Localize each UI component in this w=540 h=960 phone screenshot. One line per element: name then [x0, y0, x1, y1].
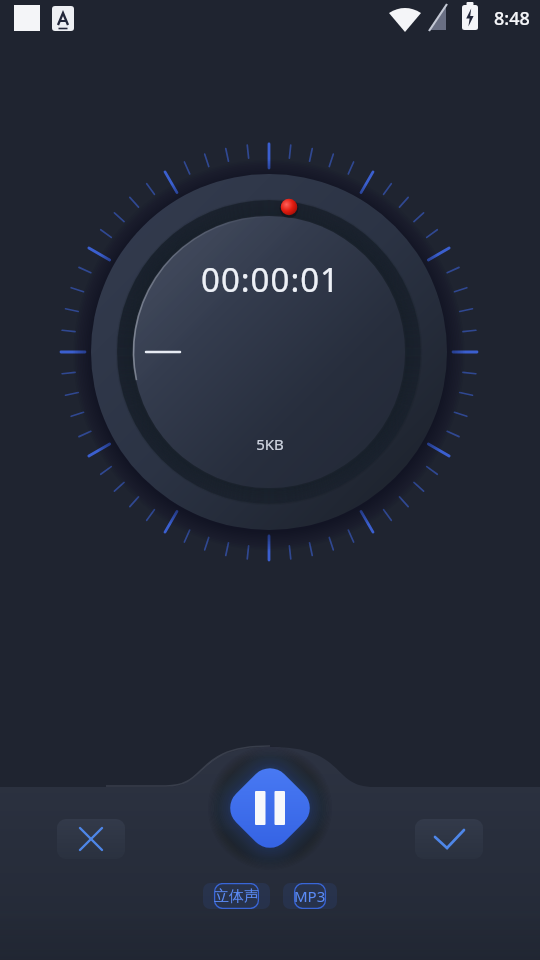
staticText: 5KB: [256, 434, 284, 454]
button[interactable]: 立体声: [203, 883, 270, 909]
button[interactable]: MP3: [283, 883, 337, 909]
staticText: 00:00:01: [201, 257, 340, 302]
staticText: 立体声: [214, 887, 259, 906]
button[interactable]: Pause recording: [212, 750, 328, 866]
staticText: 8:48: [494, 6, 530, 31]
staticText: MP3: [294, 886, 326, 906]
button[interactable]: Discard recording: [57, 819, 125, 859]
button[interactable]: Save recording: [415, 819, 483, 859]
